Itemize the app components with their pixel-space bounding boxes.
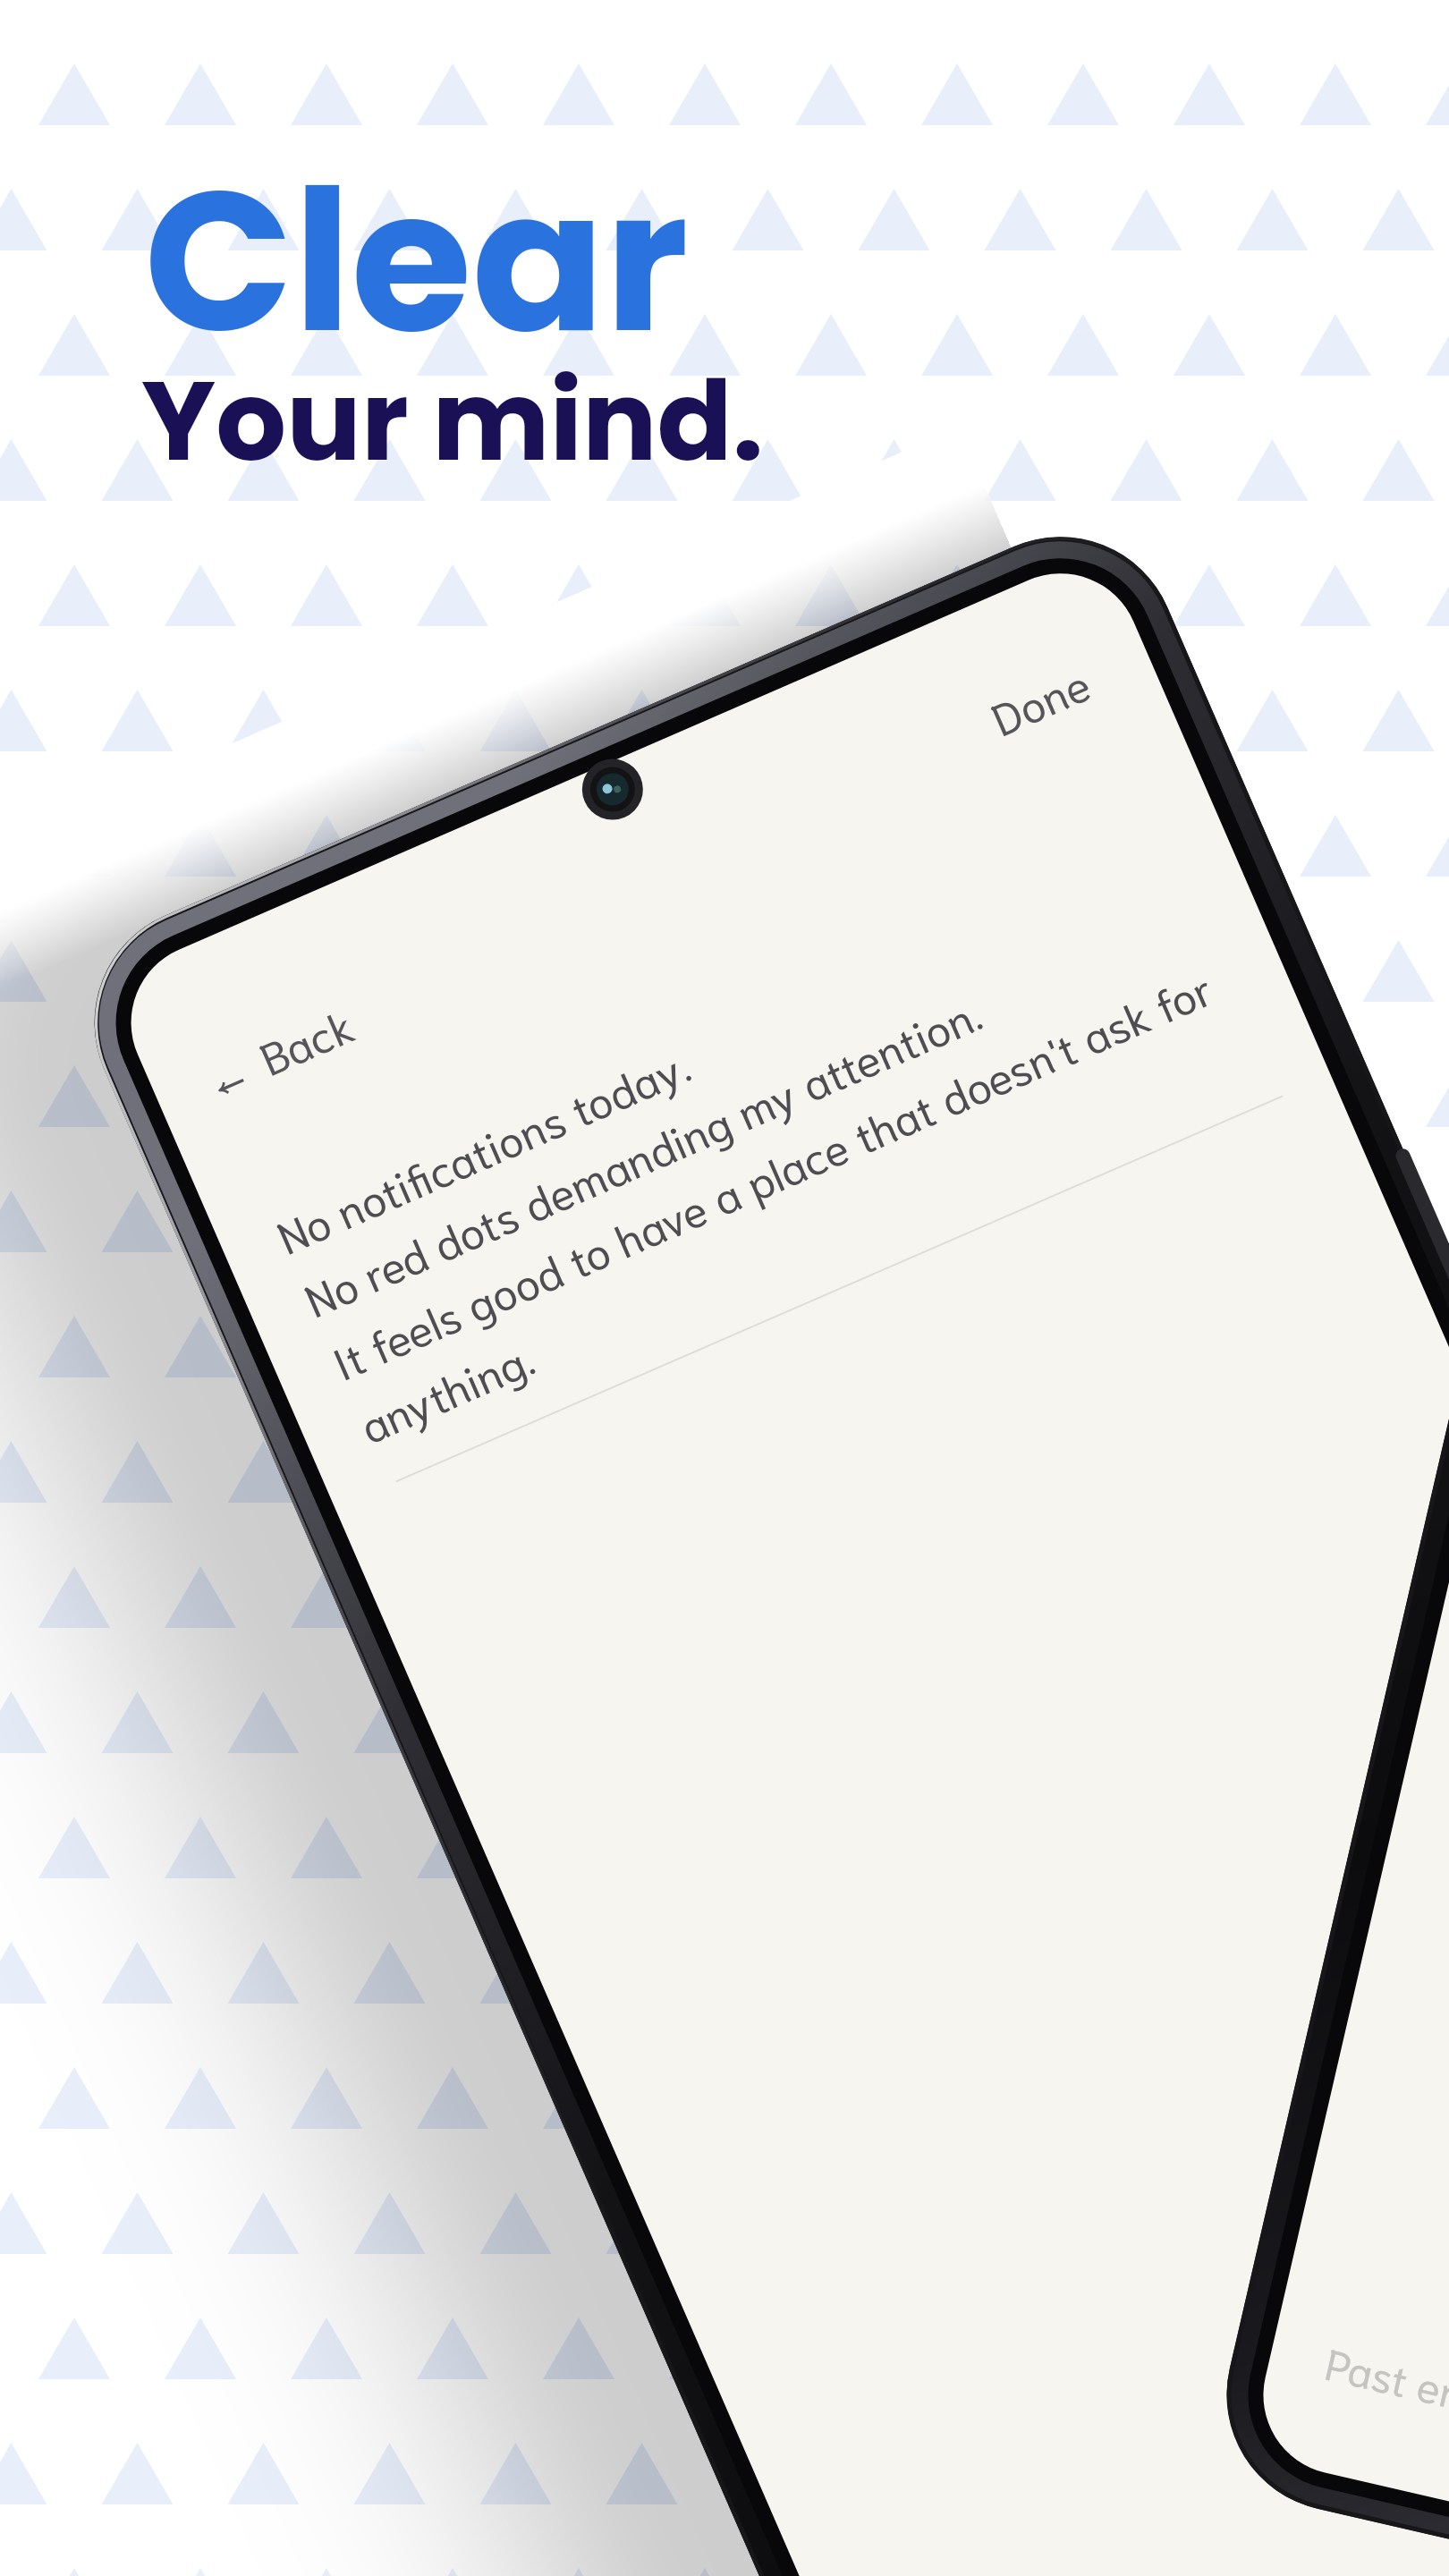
staticText: ← Back <box>200 994 361 1107</box>
button[interactable]: Done <box>958 631 1122 767</box>
button[interactable]: ← Back <box>177 973 385 1128</box>
staticText: Done <box>981 652 1098 746</box>
staticText: Your mind. <box>141 343 764 499</box>
staticText: Clear <box>144 124 689 399</box>
staticText: No notifications today. No red dots dema… <box>268 804 1308 1453</box>
staticText: Past entries <box>1321 2333 1449 2438</box>
